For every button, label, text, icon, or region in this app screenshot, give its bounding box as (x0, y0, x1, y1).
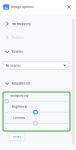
button[interactable]: Position (0, 31, 76, 44)
staticText: Contrast (13, 116, 25, 120)
button[interactable]: Adjustments (0, 77, 76, 90)
button[interactable]: No recolor (3, 61, 69, 70)
staticText: Adjustments (12, 82, 30, 85)
staticText: Recolor (12, 50, 23, 53)
staticText: Brightness (11, 105, 26, 108)
staticText: Image options (11, 5, 33, 9)
staticText: Position (12, 36, 24, 39)
staticText: Transparency (10, 94, 28, 97)
staticText: Reset (13, 135, 21, 139)
button[interactable]: Recolor (0, 45, 76, 58)
staticText: Text wrapping (12, 22, 31, 25)
button[interactable]: Close (65, 2, 74, 11)
button[interactable]: Text wrapping (0, 17, 76, 30)
staticText: No recolor (6, 64, 21, 67)
button[interactable]: Reset (9, 133, 25, 141)
